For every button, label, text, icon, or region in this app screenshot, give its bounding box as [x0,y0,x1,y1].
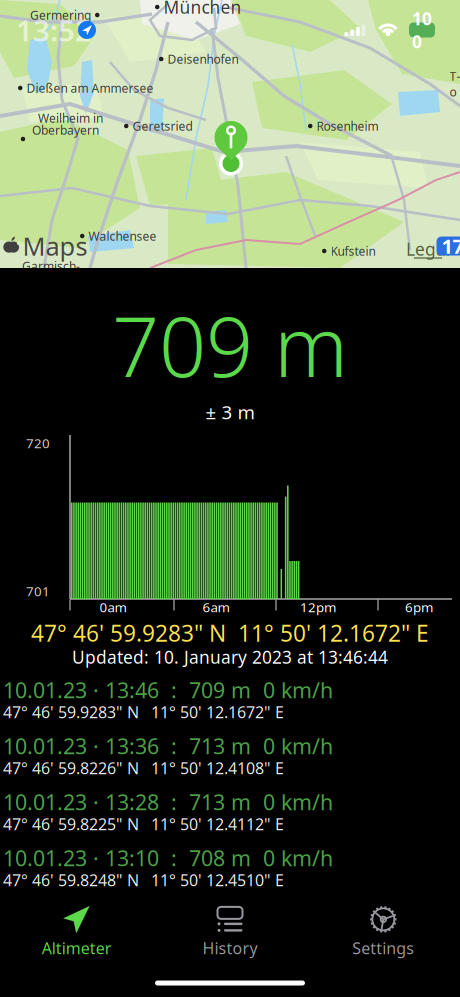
staticText: 13:52 [16,10,92,49]
staticText: 709 m [112,290,348,400]
button[interactable]: Altimeter [0,905,153,959]
button[interactable]: History [153,905,307,959]
staticText: 47° 46' 59.8225" N 11° 50' 12.4112" E [3,813,284,835]
staticText: Rosenheim [316,118,378,134]
staticText: Walchensee [88,228,156,244]
staticText: Altimeter [42,937,112,959]
staticText: Weilheim in [38,110,103,126]
staticText: To [449,68,460,100]
staticText: Settings [352,937,414,959]
staticText: München [163,0,241,18]
staticText: Oberbayern [32,122,99,138]
staticText: Legal [406,237,450,260]
staticText: 6pm [405,598,433,616]
staticText: Deisenhofen [167,51,238,67]
staticText: Kufstein [330,243,375,259]
staticText: 47° 46' 59.8226" N 11° 50' 12.4108" E [3,757,284,779]
staticText: 47° 46' 59.8248" N 11° 50' 12.4510" E [3,869,284,891]
staticText: Germering [30,7,91,23]
staticText: 178 [441,233,460,259]
staticText: 10.01.23 · 13:46 : 709 m 0 km/h [3,676,333,704]
staticText: History [202,937,257,959]
staticText: Geretsried [132,118,192,134]
staticText: ± 3 m [205,400,254,424]
staticText: 100 [412,7,432,53]
staticText: 12pm [300,598,336,616]
staticText: 0am [99,598,126,616]
staticText: 10.01.23 · 13:28 : 713 m 0 km/h [3,788,333,816]
staticText: 10.01.23 · 13:10 : 708 m 0 km/h [3,844,333,872]
staticText: Updated: 10. January 2023 at 13:46:44 [72,645,388,668]
staticText: 701 [26,582,50,600]
staticText: Dießen am Ammersee [26,80,153,96]
staticText: 10.01.23 · 13:36 : 713 m 0 km/h [3,732,333,760]
staticText: 47° 46' 59.9283" N 11° 50' 12.1672" E [31,618,429,648]
staticText: 47° 46' 59.9283" N 11° 50' 12.1672" E [3,701,284,723]
staticText: 720 [26,434,50,452]
staticText: 6am [202,598,229,616]
staticText: Maps [22,229,87,263]
staticText: Garmisch- [22,258,80,274]
button[interactable]: Settings [307,905,460,959]
